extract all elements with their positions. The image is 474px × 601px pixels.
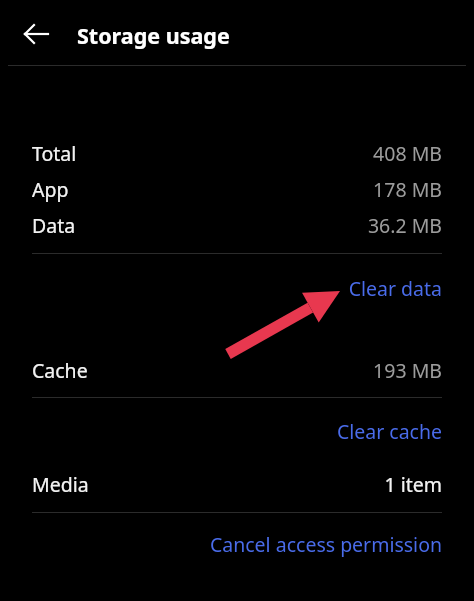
staticText: Data [32,212,76,239]
button[interactable] [0,207,474,241]
button[interactable]: Back [22,14,62,54]
staticText: Media [32,471,89,498]
staticText: Cancel access permission [209,531,442,558]
button[interactable] [0,526,474,560]
staticText: 1 item [384,471,442,498]
staticText: Clear cache [336,418,442,445]
button[interactable] [0,352,474,386]
staticText: 36.2 MB [367,212,442,239]
button[interactable] [0,466,474,500]
staticText: Storage usage [77,21,230,50]
staticText: 408 MB [373,140,442,167]
button[interactable] [0,135,474,169]
button[interactable] [0,270,474,304]
staticText: App [32,176,69,203]
staticText: 193 MB [373,357,442,384]
staticText: Total [32,140,77,167]
button[interactable] [0,171,474,205]
button[interactable] [0,413,474,447]
staticText: 178 MB [373,176,442,203]
staticText: Clear data [348,275,442,302]
staticText: Cache [32,357,88,384]
